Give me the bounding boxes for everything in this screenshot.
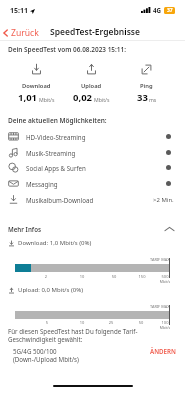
staticText: TARIF MAX — [150, 257, 170, 262]
staticText: 500 — [155, 274, 175, 279]
staticText: 5G/4G 500/100 (Down-/Upload Mbit/s) — [13, 347, 79, 363]
staticText: 33 — [137, 91, 148, 104]
staticText: Mehr Infos — [8, 225, 42, 233]
staticText: Upload: 0,0 Mbit/s (0%) — [18, 286, 84, 294]
staticText: Dein SpeedTest vom 06.08.2023 15:11: — [8, 45, 126, 54]
button[interactable]: Musikalbum-Download — [0, 192, 185, 207]
staticText: 1,01 — [18, 91, 38, 104]
staticText: SpeedTest-Ergebnisse — [50, 26, 140, 38]
staticText: Mbit/s — [39, 96, 55, 103]
button[interactable]: Zurück — [0, 25, 42, 41]
button[interactable]: Mehr Infos — [0, 221, 185, 237]
staticText: TARIF MAX — [150, 304, 170, 309]
staticText: Ping — [140, 82, 153, 90]
staticText: Messaging — [26, 180, 58, 188]
staticText: 0,02 — [73, 91, 93, 104]
staticText: 5 — [37, 320, 57, 325]
staticText: >2 Min. — [153, 196, 174, 204]
staticText: 150 — [132, 274, 152, 279]
staticText: Zurück — [11, 27, 39, 39]
staticText: Download: 1,0 Mbit/s (0%) — [18, 239, 92, 247]
staticText: 50 — [104, 274, 124, 279]
staticText: ms — [149, 96, 157, 103]
staticText: Mbit/s — [155, 325, 175, 330]
staticText: Social Apps & Surfen — [26, 164, 86, 172]
staticText: 4G — [153, 6, 162, 14]
staticText: 2 — [36, 274, 56, 279]
staticText: Mbit/s — [94, 96, 110, 103]
staticText: 37 — [167, 7, 173, 14]
staticText: ÄNDERN — [150, 347, 176, 355]
staticText: 100 — [155, 320, 175, 325]
button[interactable]: HD-Video-Streaming — [0, 129, 185, 144]
button[interactable]: Musik-Streaming — [0, 145, 185, 160]
staticText: 10 — [72, 274, 92, 279]
staticText: HD-Video-Streaming — [26, 133, 86, 141]
staticText: Musikalbum-Download — [26, 196, 94, 204]
staticText: Deine aktuellen Möglichkeiten: — [8, 116, 107, 125]
button[interactable]: Messaging — [0, 176, 185, 191]
staticText: 25 — [101, 320, 121, 325]
staticText: 15:11 — [10, 6, 28, 16]
staticText: Für diesen SpeedTest hast Du folgende Ta… — [8, 327, 138, 343]
button[interactable]: ÄNDERN — [146, 344, 180, 358]
staticText: 50 — [131, 320, 151, 325]
staticText: Musik-Streaming — [26, 149, 76, 157]
staticText: 10 — [72, 320, 92, 325]
staticText: Mbit/s — [155, 279, 175, 284]
staticText: Download — [22, 82, 51, 90]
button[interactable]: Social Apps & Surfen — [0, 160, 185, 175]
staticText: Upload — [81, 82, 102, 90]
